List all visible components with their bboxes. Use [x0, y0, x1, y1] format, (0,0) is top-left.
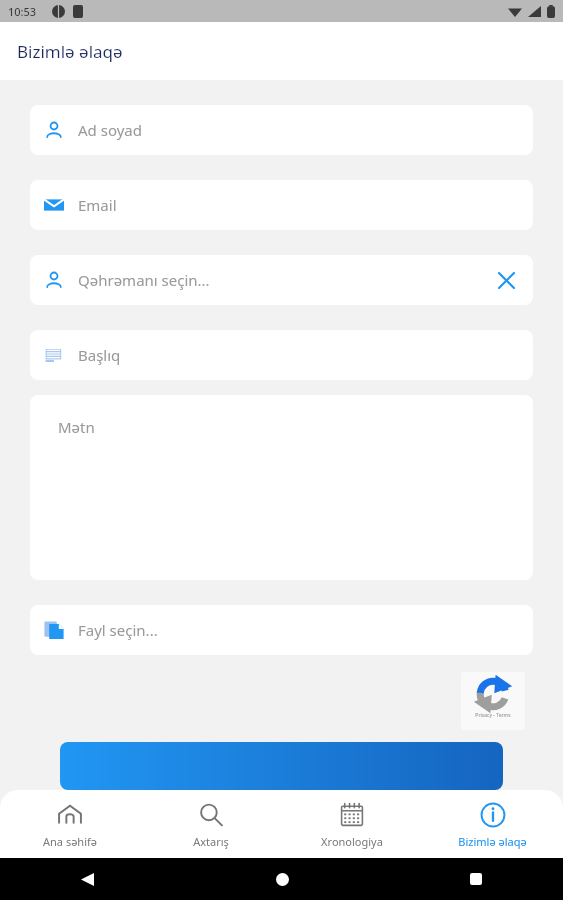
staticText: Bizimlə əlaqə — [17, 40, 123, 63]
staticText: Başlıq — [78, 345, 121, 365]
button[interactable]: Fayl seçin... — [30, 605, 533, 655]
staticText: Axtarış — [193, 834, 229, 849]
button[interactable]: Ad soyad — [30, 105, 533, 155]
button[interactable]: Recents — [459, 862, 493, 896]
button[interactable]: Email — [30, 180, 533, 230]
staticText: Ana səhifə — [43, 834, 97, 849]
button[interactable]: Bizimlə əlaqə — [422, 790, 563, 858]
button[interactable]: Başlıq — [30, 330, 533, 380]
button[interactable] — [60, 742, 503, 790]
staticText: Qəhrəmanı seçin... — [78, 270, 210, 290]
staticText: Fayl seçin... — [78, 620, 158, 640]
button[interactable]: Qəhrəmanı seçin... — [30, 255, 533, 305]
staticText: Privacy - Terms — [461, 712, 525, 719]
staticText: Email — [78, 195, 117, 215]
staticText: Ad soyad — [78, 120, 142, 140]
staticText: Mətn — [58, 417, 95, 437]
staticText: 10:53 — [8, 4, 37, 19]
staticText: Bizimlə əlaqə — [458, 834, 527, 849]
button[interactable]: reCAPTCHA — [461, 672, 525, 730]
button[interactable]: Ana səhifə — [0, 790, 140, 858]
button[interactable]: Clear selection — [493, 267, 519, 293]
staticText: Xronologiya — [321, 834, 383, 849]
button[interactable]: Mətn — [30, 395, 533, 580]
button[interactable]: Xronologiya — [281, 790, 422, 858]
button[interactable]: Axtarış — [140, 790, 281, 858]
button[interactable]: Back — [70, 862, 104, 896]
button[interactable]: Home — [265, 862, 299, 896]
